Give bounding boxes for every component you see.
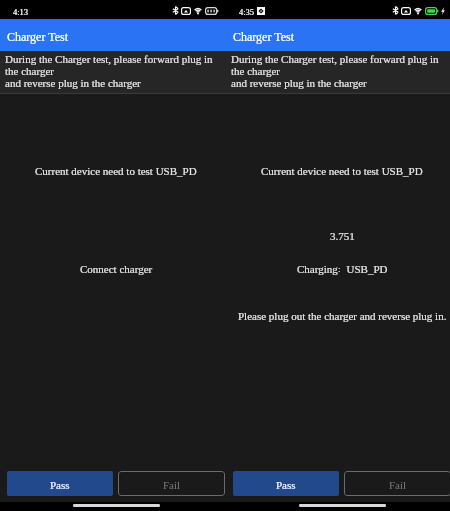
staticText: Pass <box>50 479 70 491</box>
staticText: USB_PD <box>341 263 388 275</box>
staticText: Current device need to test USB_PD <box>261 165 423 177</box>
other: Bluetooth <box>392 6 399 15</box>
staticText: 4:35 <box>239 7 255 16</box>
other: Battery <box>425 7 439 15</box>
staticText: 4:13 <box>13 7 29 16</box>
staticText: Charger Test <box>7 30 69 43</box>
other: Screenshot <box>181 7 191 15</box>
staticText: Charging <box>297 263 338 275</box>
staticText: Please plug out the charger and reverse … <box>238 310 447 322</box>
staticText: During the Charger test, please forward … <box>5 53 225 89</box>
staticText: 3.751 <box>330 230 355 242</box>
other: Screen recorder <box>257 7 265 15</box>
staticText: : <box>338 264 341 274</box>
button[interactable]: Fail <box>118 471 225 496</box>
button[interactable]: Charger Test <box>0 19 232 51</box>
staticText: Fail <box>389 479 407 491</box>
other: Bluetooth <box>172 6 179 15</box>
other: Battery <box>205 7 219 15</box>
staticText: Fail <box>163 479 181 491</box>
staticText: Current device need to test USB_PD <box>35 165 197 177</box>
button[interactable]: Pass <box>233 471 339 496</box>
staticText: During the Charger test, please forward … <box>231 53 450 89</box>
button[interactable]: Charger Test <box>226 19 450 51</box>
staticText: Pass <box>276 479 296 491</box>
staticText: Connect charger <box>80 263 153 275</box>
other: Wi-Fi <box>193 6 203 14</box>
button[interactable]: Pass <box>7 471 113 496</box>
other: Wi-Fi <box>413 6 423 14</box>
other: Screenshot <box>401 7 411 15</box>
staticText: Charger Test <box>233 30 295 43</box>
button[interactable]: Fail <box>344 471 450 496</box>
